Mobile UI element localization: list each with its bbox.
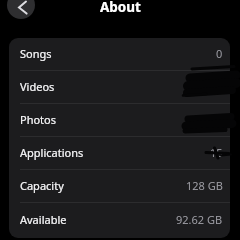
staticText: Songs [20,46,52,61]
button[interactable] [7,0,35,19]
staticText: 128 GB [186,178,223,193]
button[interactable]: Capacity [9,170,230,203]
button[interactable]: Songs [9,38,230,71]
button[interactable]: Photos [9,104,230,137]
staticText: Videos [20,79,55,94]
staticText: Available [20,212,67,227]
button[interactable]: Applications [9,137,230,170]
staticText: About [100,0,141,16]
staticText: Capacity [20,178,64,193]
staticText: 92.62 GB [176,212,223,227]
staticText: Applications [20,145,84,160]
staticText: 15 [210,145,223,160]
button[interactable]: Videos [9,71,230,104]
staticText: Photos [20,112,57,127]
staticText: 0 [216,46,223,61]
button[interactable]: Available [9,203,230,238]
